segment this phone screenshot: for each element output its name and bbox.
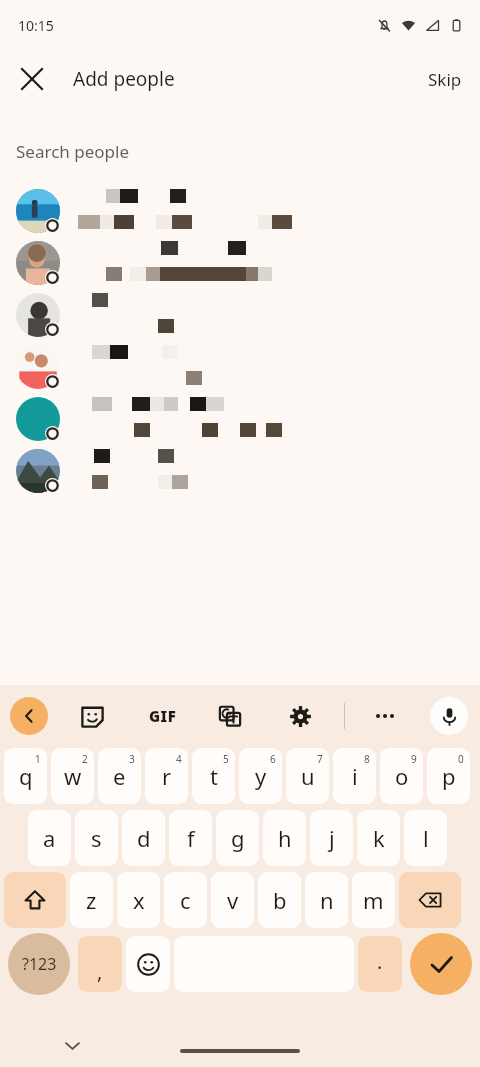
button[interactable]: Backspace bbox=[399, 872, 461, 928]
button[interactable]: w bbox=[51, 748, 94, 804]
button[interactable]: p bbox=[427, 748, 470, 804]
staticText: 4 bbox=[176, 752, 182, 766]
button[interactable]: h bbox=[263, 810, 306, 866]
staticText: v bbox=[227, 885, 239, 915]
button[interactable]: n bbox=[305, 872, 348, 928]
button[interactable]: Voice input bbox=[430, 697, 468, 735]
staticText: 3 bbox=[129, 752, 135, 766]
button[interactable]: Hide keyboard bbox=[52, 1025, 92, 1065]
staticText: Add people bbox=[73, 66, 175, 92]
button[interactable] bbox=[0, 185, 480, 237]
staticText: 7 bbox=[317, 752, 323, 766]
staticText: f bbox=[187, 823, 195, 853]
staticText: 6 bbox=[270, 752, 276, 766]
staticText: h bbox=[278, 823, 292, 853]
staticText: y bbox=[255, 761, 267, 791]
button[interactable]: Close bbox=[10, 57, 54, 101]
button[interactable] bbox=[0, 289, 480, 341]
button[interactable]: j bbox=[310, 810, 353, 866]
button[interactable]: l bbox=[404, 810, 447, 866]
button[interactable]: x bbox=[117, 872, 160, 928]
button[interactable] bbox=[0, 237, 480, 289]
staticText: 2 bbox=[82, 752, 88, 766]
button[interactable]: r bbox=[145, 748, 188, 804]
button[interactable] bbox=[0, 393, 480, 445]
button[interactable]: m bbox=[352, 872, 395, 928]
button[interactable]: k bbox=[357, 810, 400, 866]
staticText: o bbox=[395, 761, 409, 791]
staticText: Search people bbox=[16, 140, 129, 163]
staticText: g bbox=[231, 823, 245, 853]
button[interactable]: Settings bbox=[279, 695, 321, 737]
button[interactable]: u bbox=[286, 748, 329, 804]
staticText: m bbox=[363, 885, 384, 915]
button[interactable]: z bbox=[70, 872, 113, 928]
staticText: 10:15 bbox=[18, 16, 54, 35]
button[interactable]: d bbox=[122, 810, 165, 866]
button[interactable]: . bbox=[358, 936, 402, 992]
button[interactable]: c bbox=[164, 872, 207, 928]
button[interactable]: ?123 bbox=[8, 933, 70, 995]
button[interactable]: i bbox=[333, 748, 376, 804]
staticText: z bbox=[86, 885, 97, 915]
button[interactable]: e bbox=[98, 748, 141, 804]
staticText: i bbox=[352, 761, 358, 791]
staticText: n bbox=[320, 885, 334, 915]
staticText: b bbox=[273, 885, 287, 915]
staticText: r bbox=[162, 761, 172, 791]
staticText: ?123 bbox=[22, 953, 57, 975]
button[interactable]: Skip bbox=[410, 60, 480, 99]
staticText: GIF bbox=[149, 706, 177, 726]
button[interactable]: o bbox=[380, 748, 423, 804]
staticText: c bbox=[180, 885, 191, 915]
button[interactable] bbox=[0, 341, 480, 393]
staticText: , bbox=[97, 958, 103, 985]
staticText: 8 bbox=[364, 752, 370, 766]
button[interactable]: Done bbox=[410, 933, 472, 995]
staticText: q bbox=[19, 761, 33, 791]
staticText: k bbox=[373, 823, 385, 853]
button[interactable]: v bbox=[211, 872, 254, 928]
staticText: s bbox=[91, 823, 102, 853]
button[interactable]: s bbox=[75, 810, 118, 866]
button[interactable]: Sticker bbox=[71, 695, 113, 737]
button[interactable]: b bbox=[258, 872, 301, 928]
staticText: u bbox=[301, 761, 315, 791]
staticText: w bbox=[64, 761, 82, 791]
staticText: Skip bbox=[428, 68, 462, 91]
button[interactable]: t bbox=[192, 748, 235, 804]
button[interactable]: Translate bbox=[209, 695, 251, 737]
staticText: . bbox=[377, 948, 383, 975]
button[interactable]: a bbox=[28, 810, 71, 866]
staticText: 9 bbox=[411, 752, 417, 766]
staticText: 5 bbox=[223, 752, 229, 766]
button[interactable]: GIF bbox=[140, 693, 186, 739]
staticText: l bbox=[423, 823, 429, 853]
staticText: x bbox=[133, 885, 145, 915]
button[interactable] bbox=[0, 445, 480, 497]
button[interactable]: f bbox=[169, 810, 212, 866]
button[interactable]: Back bbox=[10, 697, 48, 735]
button[interactable]: y bbox=[239, 748, 282, 804]
button[interactable]: Emoji bbox=[126, 936, 170, 992]
staticText: d bbox=[137, 823, 151, 853]
button[interactable]: , bbox=[78, 936, 122, 992]
staticText: 1 bbox=[35, 752, 41, 766]
button[interactable]: Shift bbox=[4, 872, 66, 928]
button[interactable]: g bbox=[216, 810, 259, 866]
staticText: a bbox=[43, 823, 56, 853]
staticText: e bbox=[113, 761, 126, 791]
staticText: 0 bbox=[458, 752, 464, 766]
button[interactable]: More options bbox=[364, 695, 406, 737]
button[interactable]: q bbox=[4, 748, 47, 804]
staticText: t bbox=[210, 761, 218, 791]
staticText: p bbox=[442, 761, 456, 791]
staticText: j bbox=[329, 823, 335, 853]
